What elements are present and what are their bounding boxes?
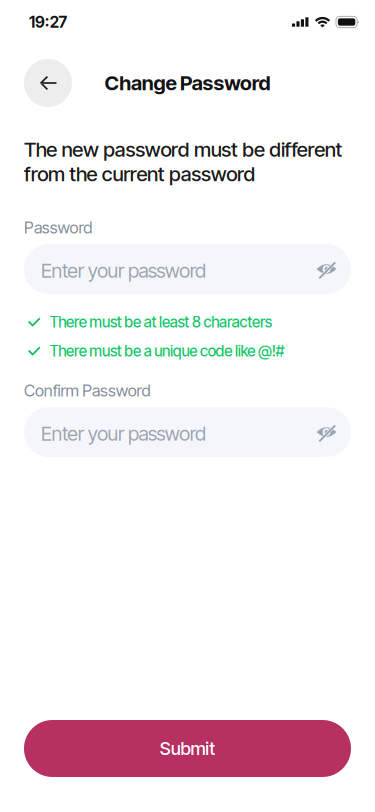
staticText: The new password must be different from …	[24, 137, 342, 186]
button[interactable]: Back	[24, 59, 72, 107]
staticText: Enter your password	[41, 422, 206, 445]
staticText: Submit	[160, 738, 215, 759]
staticText: There must be at least 8 characters	[49, 313, 272, 331]
button[interactable]: Enter your password	[24, 407, 351, 457]
staticText: There must be a unique code like @!#	[49, 342, 284, 360]
button[interactable]: Submit	[24, 720, 351, 777]
staticText: Confirm Password	[24, 381, 150, 400]
staticText: Enter your password	[41, 259, 206, 282]
staticText: Change Password	[104, 71, 271, 95]
staticText: 19:27	[29, 12, 68, 31]
button[interactable]: Enter your password	[24, 244, 351, 294]
staticText: Password	[24, 218, 92, 237]
